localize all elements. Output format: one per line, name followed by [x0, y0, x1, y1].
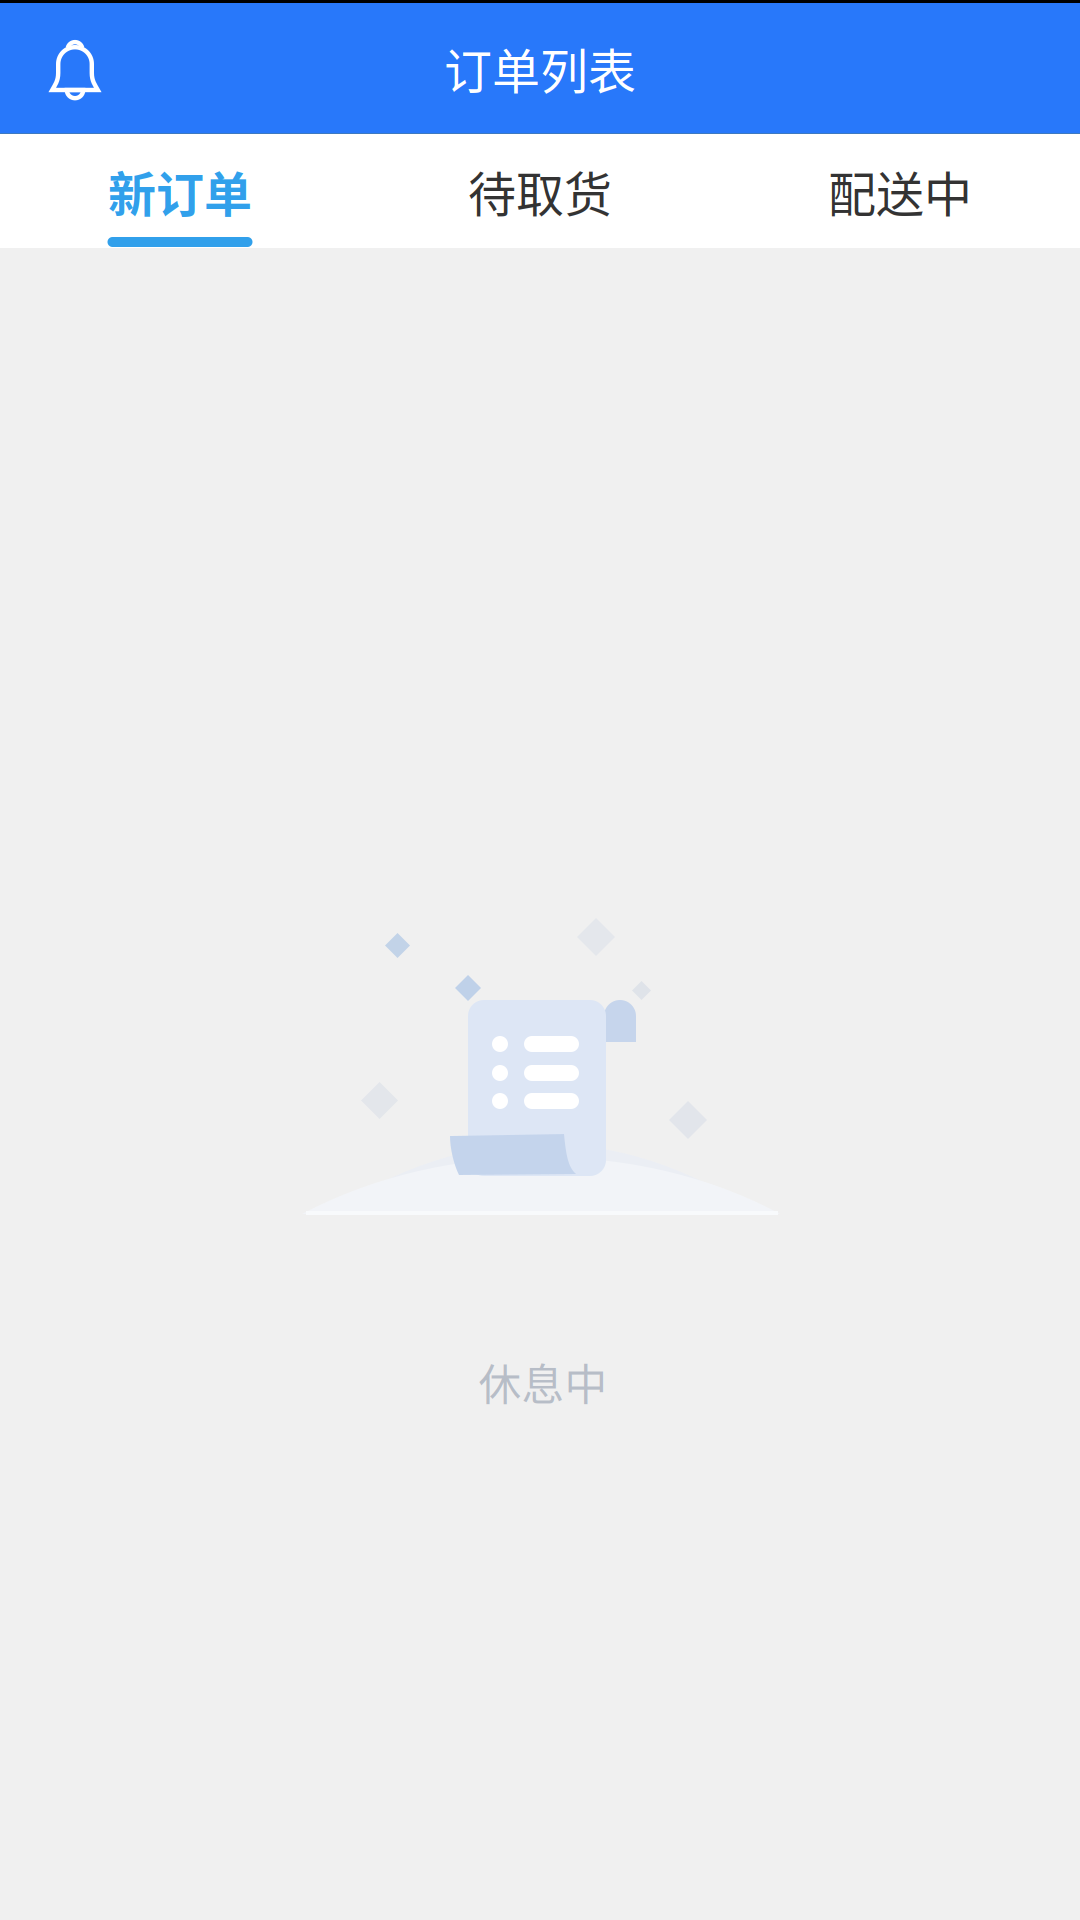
button[interactable]: 新订单	[0, 134, 360, 248]
staticText: 订单列表	[444, 33, 636, 103]
staticText: 配送中	[828, 156, 972, 226]
button[interactable]: 通知	[0, 2, 152, 133]
button[interactable]: 待取货	[360, 134, 720, 248]
staticText: 新订单	[108, 156, 252, 226]
button[interactable]: 配送中	[720, 134, 1080, 248]
staticText: 待取货	[468, 156, 612, 226]
staticText: 休息中	[478, 1351, 607, 1413]
